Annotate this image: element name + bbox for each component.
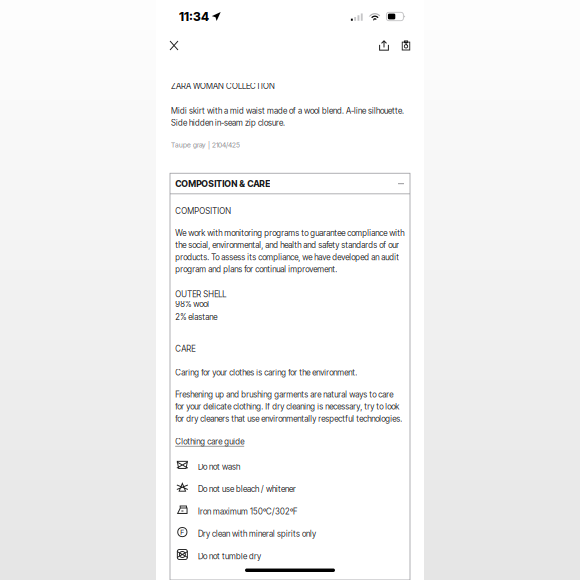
staticText: Dry clean with mineral spirits only	[198, 529, 316, 539]
staticText: Do not wash	[198, 462, 240, 472]
button[interactable]: COMPOSITION & CARE	[170, 173, 410, 194]
staticText: CARE	[175, 344, 195, 354]
staticText: Do not use bleach / whitener	[198, 484, 296, 494]
staticText: Caring for your clothes is caring for th…	[175, 368, 357, 377]
staticText: 98% wool	[175, 299, 209, 309]
staticText: Midi skirt with a mid waist made of a wo…	[171, 106, 404, 128]
staticText: 11:34	[179, 9, 209, 24]
staticText: COMPOSITION & CARE	[175, 178, 270, 189]
staticText: OUTER SHELL	[175, 289, 226, 299]
staticText: We work with monitoring programs to guar…	[175, 228, 404, 274]
button[interactable]: Share	[373, 34, 395, 56]
button[interactable]: Shopping list	[395, 34, 417, 56]
button[interactable]: Close	[163, 34, 185, 56]
staticText: Clothing care guide	[175, 437, 244, 446]
staticText: Freshening up and brushing garments are …	[175, 389, 402, 424]
staticText: Iron maximum 150ºC/302ºF	[198, 507, 297, 516]
staticText: 2% elastane	[175, 312, 217, 322]
staticText: ZARA WOMAN COLLECTION	[171, 81, 275, 91]
staticText: Taupe gray | 2104/425	[171, 141, 240, 149]
staticText: F	[180, 528, 184, 536]
button[interactable]: Clothing care guide	[175, 437, 244, 446]
staticText: Do not tumble dry	[198, 551, 261, 561]
staticText: COMPOSITION	[175, 206, 231, 216]
